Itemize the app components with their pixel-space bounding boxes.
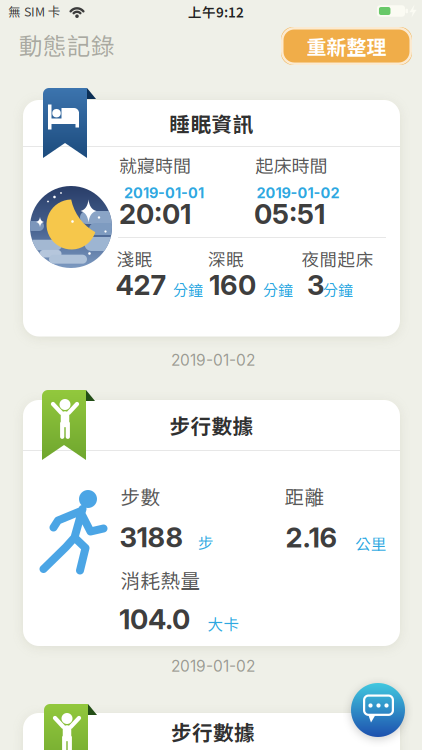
staticText: 2019-01-02 bbox=[256, 184, 339, 202]
staticText: 20:01 bbox=[119, 197, 191, 231]
staticText: 就寢時間 bbox=[119, 152, 191, 178]
staticText: 3 bbox=[307, 268, 324, 302]
staticText: 大卡 bbox=[207, 612, 239, 635]
staticText: 分鐘 bbox=[263, 279, 293, 300]
button[interactable]: 重新整理 bbox=[281, 27, 412, 65]
staticText: 104.0 bbox=[119, 603, 190, 636]
staticText: 起床時間 bbox=[255, 152, 327, 178]
staticText: 3188 bbox=[119, 521, 183, 554]
staticText: 動態記錄 bbox=[19, 27, 115, 61]
staticText: 427 bbox=[115, 268, 166, 302]
staticText: 2019-01-02 bbox=[171, 657, 255, 675]
staticText: 步數 bbox=[120, 482, 160, 510]
staticText: 睡眠資訊 bbox=[169, 108, 253, 138]
staticText: 步行數據 bbox=[169, 410, 253, 440]
staticText: 夜間起床 bbox=[301, 246, 373, 271]
staticText: 無 SIM 卡 bbox=[8, 2, 61, 20]
staticText: 分鐘 bbox=[173, 279, 203, 300]
staticText: 160 bbox=[209, 268, 256, 302]
staticText: 步 bbox=[198, 531, 214, 553]
staticText: 消耗熱量 bbox=[120, 565, 200, 594]
staticText: 2019-01-02 bbox=[171, 351, 255, 369]
staticText: 2.16 bbox=[285, 521, 337, 554]
staticText: 05:51 bbox=[254, 197, 325, 231]
staticText: 2019-01-01 bbox=[124, 184, 204, 202]
staticText: 重新整理 bbox=[306, 31, 386, 60]
staticText: 上午9:12 bbox=[188, 2, 244, 21]
button[interactable]: 線上客服 bbox=[351, 683, 405, 737]
staticText: 公里 bbox=[355, 532, 387, 554]
staticText: 分鐘 bbox=[323, 279, 353, 300]
staticText: 距離 bbox=[284, 482, 324, 510]
staticText: 淺眠 bbox=[116, 246, 152, 271]
staticText: 深眠 bbox=[208, 246, 244, 271]
staticText: 步行數據 bbox=[171, 717, 255, 746]
